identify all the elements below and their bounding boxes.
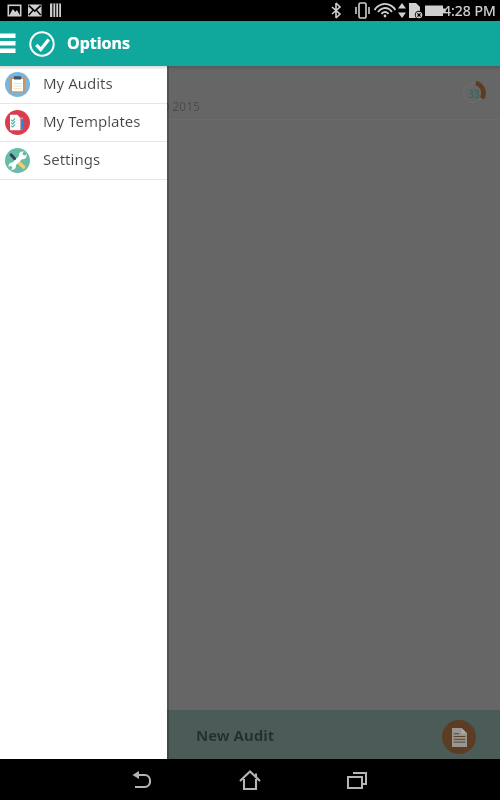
staticText: 33 — [468, 87, 480, 101]
staticText: New Audit — [196, 725, 275, 745]
button[interactable]: My Audits — [0, 66, 167, 103]
button[interactable]: Open navigation drawer — [0, 29, 18, 59]
staticText: Options — [67, 32, 130, 54]
button[interactable]: New Audit — [0, 710, 500, 759]
staticText: 4:28 PM — [443, 1, 496, 20]
button[interactable]: Home — [230, 760, 270, 800]
staticText: My Audits — [43, 73, 113, 93]
button[interactable]: New Audit — [442, 720, 476, 754]
button[interactable]: Settings — [0, 142, 167, 179]
staticText: Oct 30 2015 — [133, 98, 200, 114]
button[interactable]: Back — [123, 760, 163, 800]
staticText: My Templates — [43, 111, 141, 131]
staticText: Settings — [43, 149, 101, 169]
button[interactable]: My Templates — [0, 104, 167, 141]
button[interactable]: Recents — [337, 760, 377, 800]
